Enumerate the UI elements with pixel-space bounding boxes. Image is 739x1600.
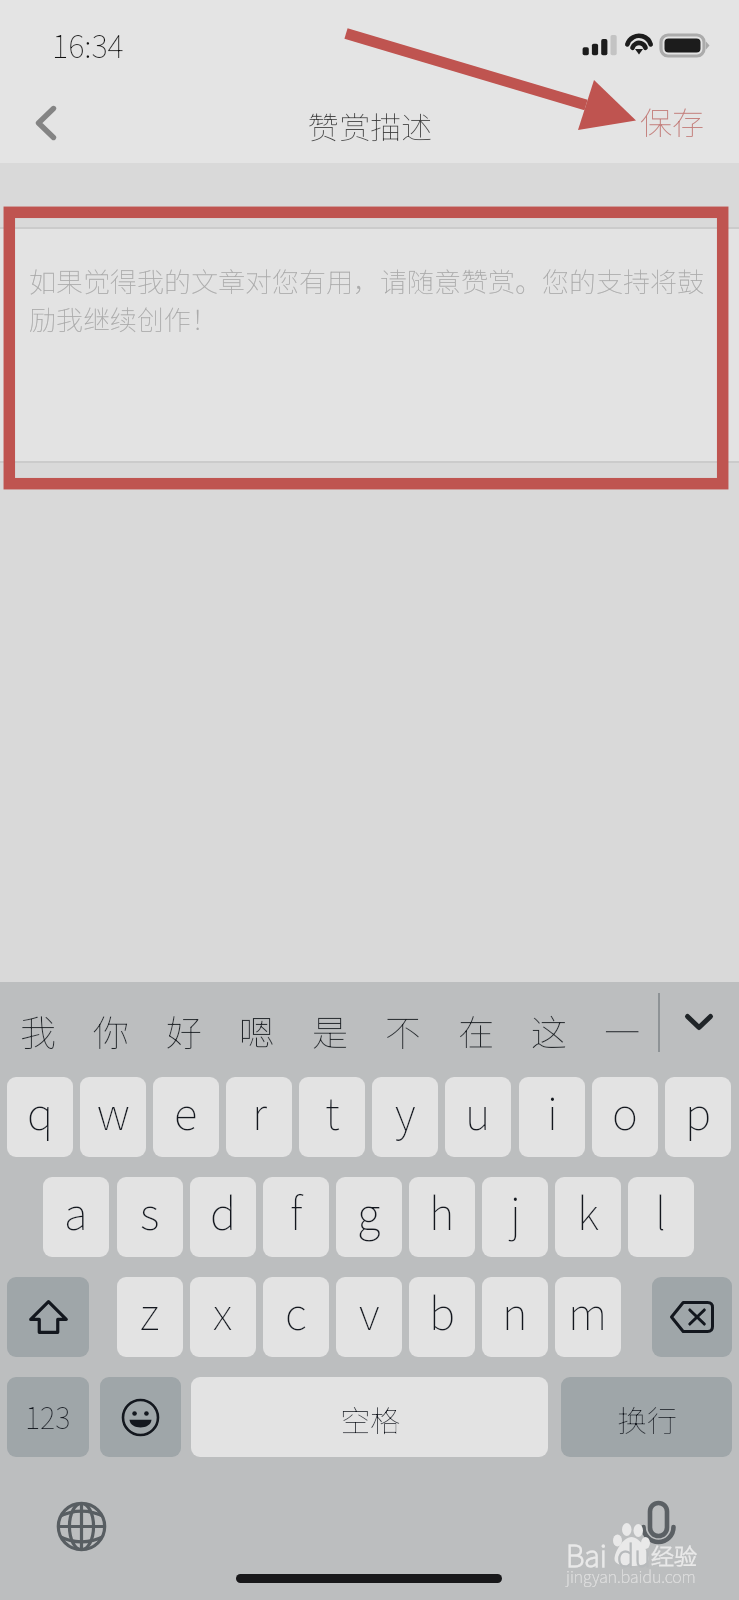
staticText: 保存 [640, 98, 705, 144]
button[interactable]: p [665, 1077, 731, 1157]
staticText: d [210, 1179, 237, 1243]
staticText: 嗯 [239, 1004, 276, 1056]
button[interactable]: d [190, 1177, 256, 1257]
button[interactable]: e [153, 1077, 219, 1157]
staticText: a [64, 1179, 88, 1243]
button[interactable]: m [555, 1277, 621, 1357]
staticText: v [359, 1279, 380, 1343]
button[interactable]: 嗯 [223, 982, 291, 1077]
button[interactable]: r [226, 1077, 292, 1157]
button[interactable]: t [299, 1077, 365, 1157]
staticText: h [429, 1179, 455, 1243]
button[interactable]: 换行 [561, 1377, 732, 1457]
button[interactable]: Switch language [57, 1502, 106, 1551]
staticText: q [27, 1079, 54, 1143]
staticText: 不 [385, 1004, 422, 1056]
button[interactable]: s [117, 1177, 183, 1257]
button[interactable]: c [263, 1277, 329, 1357]
staticText: 是 [312, 1004, 349, 1056]
staticText: t [325, 1079, 340, 1143]
staticText: du [617, 1533, 651, 1575]
button[interactable]: 我 [4, 982, 72, 1077]
staticText: l [655, 1179, 667, 1243]
staticText: 你 [93, 1004, 130, 1056]
button[interactable]: b [409, 1277, 475, 1357]
button[interactable]: 123 [7, 1377, 89, 1457]
button[interactable]: i [519, 1077, 585, 1157]
staticText: n [502, 1279, 528, 1343]
staticText: 我 [20, 1004, 57, 1056]
button[interactable]: w [80, 1077, 146, 1157]
button[interactable]: f [263, 1177, 329, 1257]
button[interactable]: 保存 [622, 80, 722, 161]
staticText: f [290, 1179, 303, 1243]
staticText: 空格 [340, 1397, 400, 1440]
button[interactable]: v [336, 1277, 402, 1357]
staticText: e [174, 1079, 198, 1143]
staticText: Bai [566, 1533, 607, 1575]
staticText: 如果觉得我的文章对您有用，请随意赞赏。您的支持将鼓励我继续创作！ [29, 261, 705, 337]
button[interactable]: y [372, 1077, 438, 1157]
button[interactable]: l [628, 1177, 694, 1257]
staticText: 经验 [651, 1538, 697, 1571]
button[interactable]: j [482, 1177, 548, 1257]
staticText: u [465, 1079, 491, 1143]
button[interactable]: h [409, 1177, 475, 1257]
button[interactable]: 好 [150, 982, 218, 1077]
button[interactable]: 一 [588, 982, 656, 1077]
staticText: 赞赏描述 [308, 103, 432, 148]
staticText: k [577, 1179, 599, 1243]
button[interactable]: Back [6, 82, 86, 163]
button[interactable]: a [43, 1177, 109, 1257]
button[interactable]: g [336, 1177, 402, 1257]
staticText: y [395, 1079, 416, 1143]
staticText: 换行 [617, 1397, 677, 1440]
button[interactable]: z [117, 1277, 183, 1357]
staticText: j [510, 1179, 521, 1243]
button[interactable]: Hide keyboard [664, 974, 734, 1069]
staticText: m [568, 1279, 608, 1343]
button[interactable]: x [190, 1277, 256, 1357]
staticText: i [547, 1079, 558, 1143]
staticText: r [252, 1079, 267, 1143]
button[interactable]: n [482, 1277, 548, 1357]
button[interactable]: Shift [7, 1277, 89, 1357]
staticText: c [285, 1279, 307, 1343]
staticText: p [685, 1079, 712, 1143]
staticText: 123 [25, 1395, 71, 1437]
staticText: z [140, 1279, 160, 1343]
button[interactable]: 你 [77, 982, 145, 1077]
staticText: g [357, 1179, 381, 1243]
staticText: 16:34 [52, 22, 124, 67]
staticText: 好 [166, 1004, 203, 1056]
button[interactable]: q [7, 1077, 73, 1157]
button[interactable]: u [445, 1077, 511, 1157]
button[interactable]: o [592, 1077, 658, 1157]
button[interactable]: 是 [296, 982, 364, 1077]
staticText: jingyan.baidu.com [566, 1564, 696, 1587]
button[interactable]: 这 [515, 982, 583, 1077]
button[interactable]: 在 [442, 982, 510, 1077]
button[interactable]: 如果觉得我的文章对您有用，请随意赞赏。您的支持将鼓励我继续创作！ [0, 227, 739, 463]
staticText: 这 [531, 1004, 568, 1056]
staticText: w [97, 1079, 130, 1143]
staticText: o [612, 1079, 638, 1143]
button[interactable]: Emoji [100, 1377, 181, 1457]
staticText: 一 [604, 1004, 641, 1056]
button[interactable]: 空格 [191, 1377, 548, 1457]
staticText: 在 [458, 1004, 495, 1056]
staticText: s [140, 1179, 160, 1243]
button[interactable]: 不 [369, 982, 437, 1077]
button[interactable]: Backspace [652, 1277, 732, 1357]
staticText: x [213, 1279, 233, 1343]
staticText: b [429, 1279, 456, 1343]
button[interactable]: k [555, 1177, 621, 1257]
